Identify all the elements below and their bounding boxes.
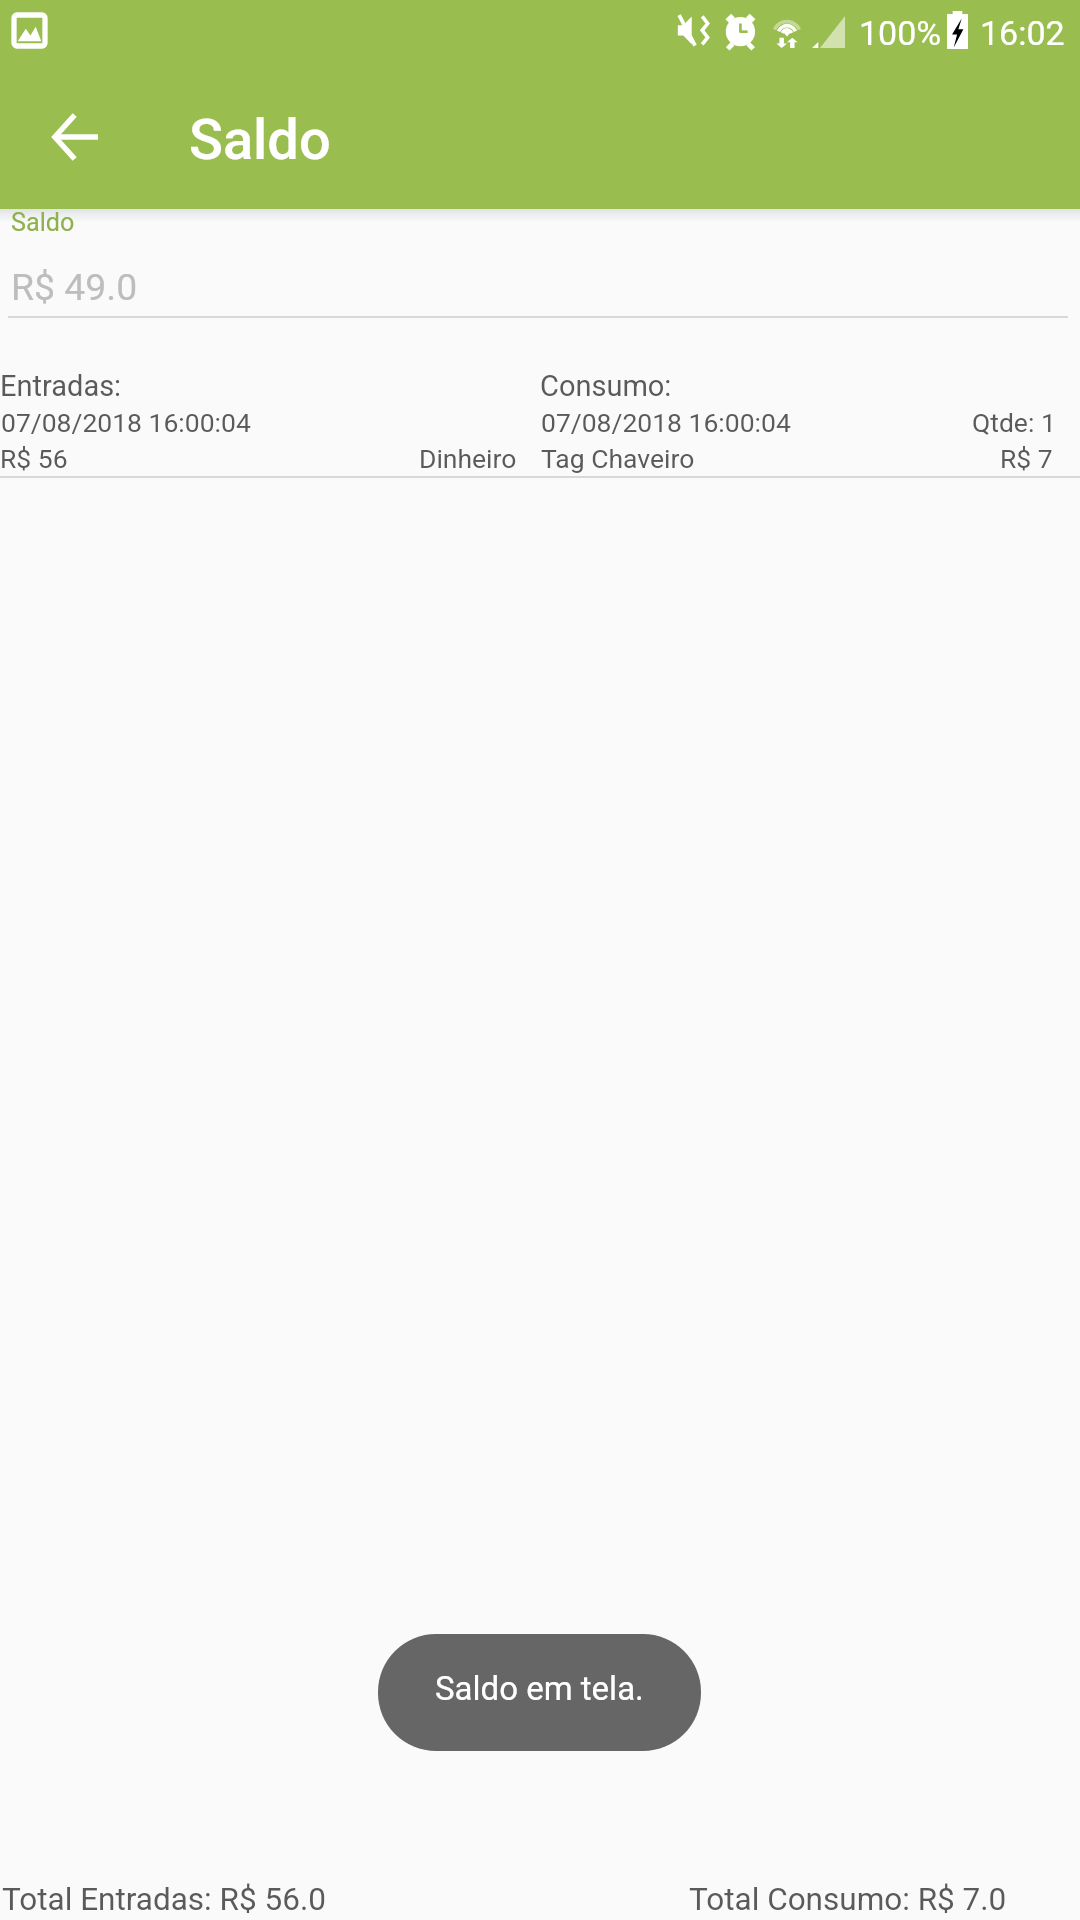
- staticText: 16:02: [980, 13, 1065, 53]
- staticText: Saldo: [11, 208, 75, 238]
- staticText: 07/08/2018 16:00:04: [1, 407, 251, 438]
- staticText: R$ 56: [0, 443, 68, 474]
- staticText: Saldo: [189, 107, 331, 173]
- staticText: 07/08/2018 16:00:04: [541, 407, 791, 438]
- staticText: 100%: [859, 13, 942, 53]
- staticText: Qtde: 1: [972, 407, 1056, 438]
- staticText: Total Consumo: R$ 7.0: [689, 1881, 1007, 1918]
- button[interactable]: Entradas:: [0, 360, 534, 478]
- staticText: R$ 7: [1000, 443, 1053, 474]
- staticText: Total Entradas: R$ 56.0: [2, 1881, 326, 1918]
- button[interactable]: Consumo:: [534, 360, 1080, 478]
- staticText: Dinheiro: [419, 443, 517, 474]
- button[interactable]: Back: [26, 92, 122, 178]
- button[interactable]: Saldo: [0, 209, 1080, 319]
- staticText: Tag Chaveiro: [541, 443, 695, 474]
- staticText: Saldo em tela.: [435, 1669, 644, 1708]
- staticText: Consumo:: [540, 369, 672, 403]
- staticText: R$ 49.0: [11, 265, 138, 309]
- staticText: Entradas:: [0, 369, 122, 403]
